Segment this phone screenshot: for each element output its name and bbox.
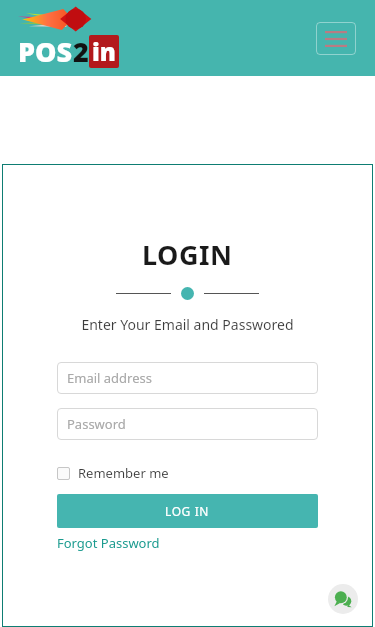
staticText: POS xyxy=(18,33,73,70)
staticText: in xyxy=(92,35,116,68)
staticText: 2 xyxy=(73,33,89,70)
staticText: Password xyxy=(67,415,126,433)
button[interactable]: Forgot Password xyxy=(57,534,160,552)
staticText: LOGIN xyxy=(142,236,233,273)
button[interactable]: Password xyxy=(57,408,318,440)
button[interactable]: Remember me xyxy=(57,464,169,482)
button[interactable]: Email address xyxy=(57,362,318,394)
staticText: LOG IN xyxy=(165,503,210,519)
button[interactable]: Open chat support xyxy=(328,584,358,614)
button[interactable]: Open navigation menu xyxy=(316,22,356,55)
staticText: Email address xyxy=(67,369,152,387)
staticText: Enter Your Email and Passwored xyxy=(81,315,294,334)
staticText: Remember me xyxy=(78,464,169,482)
button[interactable]: LOG IN xyxy=(57,494,318,528)
